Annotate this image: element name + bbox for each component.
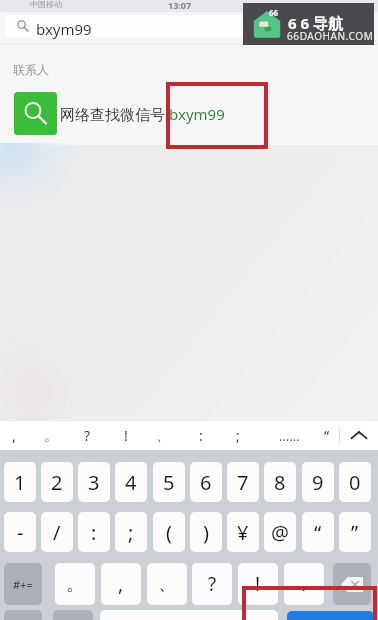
button[interactable]: [100, 610, 278, 620]
button[interactable]: #+=: [4, 563, 42, 605]
button[interactable]: 9: [302, 462, 334, 502]
button[interactable]: ,: [0, 421, 32, 450]
staticText: 、: [156, 427, 170, 445]
staticText: ;: [236, 426, 240, 445]
staticText: (: [166, 519, 172, 546]
staticText: ”: [351, 519, 359, 546]
button[interactable]: 2: [41, 462, 73, 502]
button[interactable]: (: [153, 512, 185, 552]
button[interactable]: 。: [55, 563, 95, 605]
staticText: 66: [269, 7, 279, 18]
button[interactable]: 4: [115, 462, 147, 502]
button[interactable]: !: [238, 563, 278, 605]
staticText: 7: [237, 469, 249, 496]
staticText: 6 6 导航: [288, 13, 343, 33]
staticText: ?: [208, 571, 217, 597]
staticText: “: [314, 519, 322, 546]
button[interactable]: 123: [4, 610, 42, 620]
staticText: “: [324, 426, 330, 445]
staticText: /: [53, 519, 61, 546]
button[interactable]: 5: [153, 462, 185, 502]
staticText: 13:07: [168, 0, 192, 11]
button[interactable]: .: [284, 563, 324, 605]
staticText: 0: [349, 469, 361, 496]
button[interactable]: 网络查找微信号:bxym99: [0, 85, 378, 143]
button[interactable]: @: [264, 512, 296, 552]
button[interactable]: 、: [147, 563, 187, 605]
staticText: 、: [158, 572, 177, 596]
button[interactable]: ¥: [227, 512, 259, 552]
staticText: :: [199, 426, 203, 445]
button[interactable]: Backspace: [333, 563, 371, 605]
staticText: 1: [14, 469, 26, 496]
staticText: :: [91, 519, 97, 546]
button[interactable]: -: [4, 512, 36, 552]
staticText: #+=: [13, 577, 33, 592]
staticText: 9: [312, 469, 324, 496]
button[interactable]: ,: [101, 563, 141, 605]
button[interactable]: ): [190, 512, 222, 552]
staticText: 3: [88, 469, 100, 496]
button[interactable]: “: [302, 512, 334, 552]
staticText: bxym99: [36, 19, 92, 39]
button[interactable]: 66 Navigation watermark: [243, 3, 374, 45]
staticText: !: [255, 571, 261, 597]
staticText: ?: [84, 426, 91, 445]
staticText: ,: [12, 426, 16, 445]
staticText: 2: [51, 469, 63, 496]
staticText: ……: [279, 427, 300, 445]
staticText: ;: [128, 519, 134, 546]
button[interactable]: 、: [144, 421, 181, 450]
button[interactable]: :: [182, 421, 219, 450]
staticText: @: [271, 519, 289, 546]
button[interactable]: ;: [115, 512, 147, 552]
button[interactable]: ?: [192, 563, 232, 605]
staticText: 5: [163, 469, 175, 496]
staticText: !: [124, 426, 128, 445]
staticText: 8: [274, 469, 286, 496]
staticText: 66DAOHAN.COM: [287, 29, 374, 43]
button[interactable]: 1: [4, 462, 36, 502]
staticText: 。: [44, 427, 58, 445]
staticText: 6: [200, 469, 212, 496]
button[interactable]: Hide keyboard: [339, 421, 378, 450]
button[interactable]: ”: [339, 512, 371, 552]
staticText: 。: [66, 572, 85, 596]
staticText: -: [17, 519, 24, 546]
staticText: 4: [125, 469, 137, 496]
button[interactable]: ;: [219, 421, 256, 450]
button[interactable]: 3: [78, 462, 110, 502]
button[interactable]: ?: [69, 421, 106, 450]
button[interactable]: 7: [227, 462, 259, 502]
staticText: ¥: [237, 519, 249, 546]
staticText: 网络查找微信号:bxym99: [60, 104, 225, 124]
button[interactable]: 0: [339, 462, 371, 502]
button[interactable]: !: [107, 421, 144, 450]
button[interactable]: ……: [264, 421, 314, 450]
button[interactable]: :: [78, 512, 110, 552]
staticText: .: [301, 571, 307, 597]
button[interactable]: /: [41, 512, 73, 552]
button[interactable]: 6: [190, 462, 222, 502]
button[interactable]: bxym99: [5, 15, 373, 38]
button[interactable]: 符: [53, 610, 93, 620]
staticText: 中国移动: [30, 0, 62, 9]
button[interactable]: “: [314, 421, 339, 450]
staticText: 联系人: [13, 62, 49, 77]
button[interactable]: 8: [264, 462, 296, 502]
staticText: ,: [118, 571, 124, 597]
button[interactable]: 搜索: [287, 611, 374, 620]
button[interactable]: 。: [32, 421, 69, 450]
staticText: ): [203, 519, 209, 546]
